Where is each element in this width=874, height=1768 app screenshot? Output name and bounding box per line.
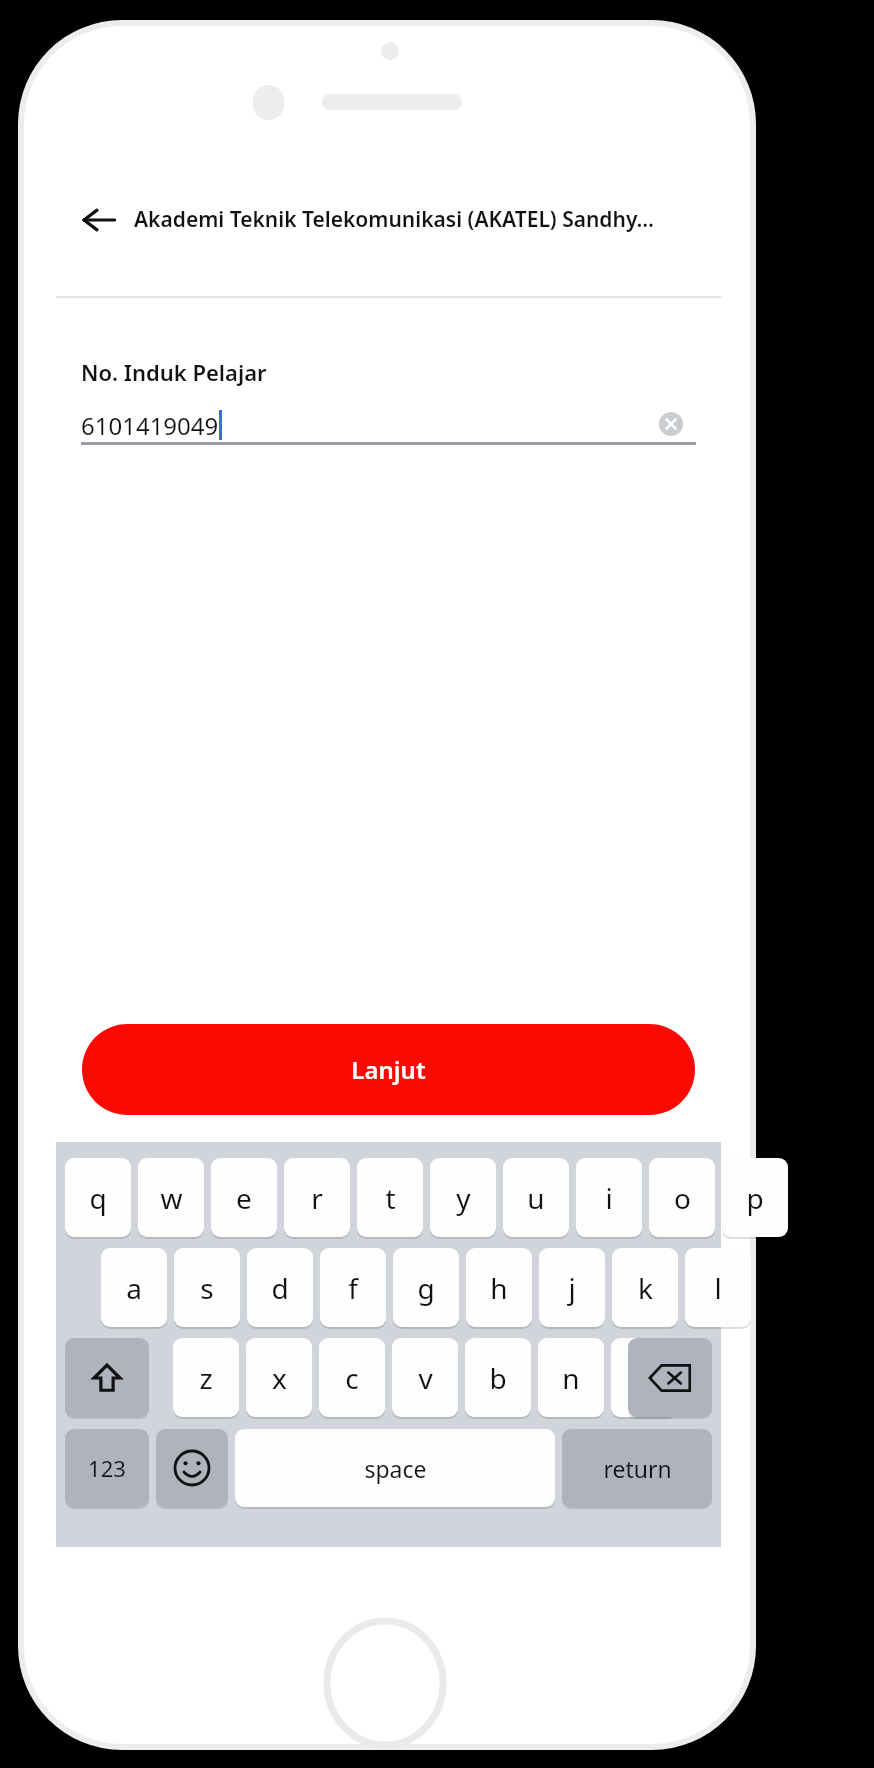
button[interactable]: p: [722, 1158, 788, 1237]
button[interactable]: a: [101, 1248, 167, 1327]
staticText: x: [272, 1359, 287, 1397]
button[interactable]: Back: [68, 189, 130, 251]
staticText: y: [456, 1179, 471, 1217]
button[interactable]: r: [284, 1158, 350, 1237]
button[interactable]: j: [539, 1248, 605, 1327]
staticText: b: [489, 1359, 507, 1397]
staticText: v: [418, 1359, 433, 1397]
button[interactable]: l: [685, 1248, 751, 1327]
button[interactable]: m: [611, 1338, 677, 1417]
staticText: m: [631, 1359, 658, 1397]
button[interactable]: Lanjut: [82, 1024, 695, 1115]
staticText: f: [348, 1269, 358, 1307]
button[interactable]: d: [247, 1248, 313, 1327]
button[interactable]: return: [562, 1429, 712, 1507]
button[interactable]: v: [392, 1338, 458, 1417]
button[interactable]: k: [612, 1248, 678, 1327]
staticText: p: [746, 1179, 764, 1217]
button[interactable]: 123: [65, 1429, 149, 1507]
button[interactable]: e: [211, 1158, 277, 1237]
button[interactable]: Shift: [65, 1338, 149, 1417]
staticText: w: [160, 1179, 183, 1217]
staticText: space: [364, 1453, 427, 1484]
staticText: a: [126, 1269, 142, 1307]
staticText: return: [603, 1453, 672, 1484]
button[interactable]: x: [246, 1338, 312, 1417]
button[interactable]: q: [65, 1158, 131, 1237]
staticText: i: [605, 1179, 613, 1217]
button[interactable]: f: [320, 1248, 386, 1327]
staticText: l: [714, 1269, 722, 1307]
staticText: Lanjut: [351, 1053, 426, 1086]
staticText: k: [638, 1269, 653, 1307]
button[interactable]: Backspace: [628, 1338, 712, 1417]
staticText: j: [568, 1269, 576, 1307]
button[interactable]: Emoji: [156, 1429, 228, 1507]
staticText: 123: [88, 1453, 126, 1483]
staticText: h: [490, 1269, 508, 1307]
button[interactable]: y: [430, 1158, 496, 1237]
button[interactable]: n: [538, 1338, 604, 1417]
button[interactable]: Clear text: [654, 407, 688, 441]
button[interactable]: b: [465, 1338, 531, 1417]
button[interactable]: o: [649, 1158, 715, 1237]
button[interactable]: 6101419049: [81, 401, 696, 449]
staticText: n: [562, 1359, 580, 1397]
button[interactable]: u: [503, 1158, 569, 1237]
button[interactable]: g: [393, 1248, 459, 1327]
button[interactable]: c: [319, 1338, 385, 1417]
staticText: c: [345, 1359, 359, 1397]
staticText: No. Induk Pelajar: [81, 357, 267, 387]
staticText: 6101419049: [81, 409, 219, 442]
staticText: u: [527, 1179, 545, 1217]
staticText: g: [417, 1269, 435, 1307]
staticText: t: [385, 1179, 396, 1217]
staticText: q: [89, 1179, 107, 1217]
button[interactable]: z: [173, 1338, 239, 1417]
button[interactable]: s: [174, 1248, 240, 1327]
button[interactable]: i: [576, 1158, 642, 1237]
staticText: d: [271, 1269, 289, 1307]
staticText: r: [311, 1179, 323, 1217]
staticText: Akademi Teknik Telekomunikasi (AKATEL) S…: [134, 205, 655, 234]
staticText: o: [674, 1179, 691, 1217]
staticText: z: [199, 1359, 213, 1397]
button[interactable]: t: [357, 1158, 423, 1237]
button[interactable]: h: [466, 1248, 532, 1327]
staticText: s: [200, 1269, 214, 1307]
button[interactable]: space: [235, 1429, 555, 1507]
button[interactable]: w: [138, 1158, 204, 1237]
staticText: e: [236, 1179, 252, 1217]
